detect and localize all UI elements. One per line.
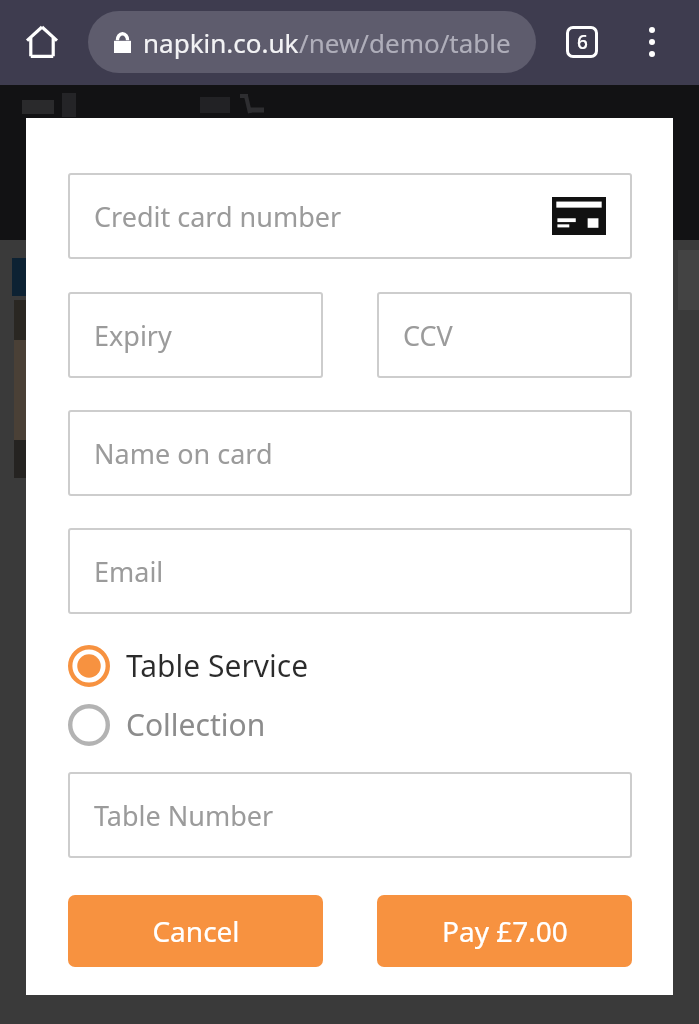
staticText: Credit card number (94, 198, 342, 235)
button[interactable]: Cancel (68, 895, 323, 967)
button[interactable]: napkin.co.uk (88, 11, 536, 73)
staticText: /new/demo/table (299, 25, 511, 60)
staticText: Table Service (126, 645, 309, 686)
button[interactable]: More options (622, 12, 682, 72)
button[interactable]: Collection (68, 695, 632, 754)
button[interactable]: Name on card (68, 410, 632, 496)
button[interactable]: Table Number (68, 772, 632, 858)
button[interactable]: Pay £7.00 (377, 895, 632, 967)
button[interactable]: Credit card number (68, 173, 632, 259)
button[interactable]: CCV (377, 292, 632, 378)
staticText: Name on card (94, 435, 273, 472)
staticText: Table Number (94, 797, 274, 834)
button[interactable]: Email (68, 528, 632, 614)
button[interactable]: Tabs, 6 open (552, 12, 612, 72)
staticText: Expiry (94, 317, 172, 354)
button[interactable]: Table Service (68, 636, 632, 695)
button[interactable]: Home (10, 10, 74, 74)
staticText: Cancel (152, 912, 240, 950)
staticText: napkin.co.uk (143, 25, 299, 60)
staticText: Email (94, 553, 164, 590)
staticText: Pay £7.00 (442, 912, 568, 950)
staticText: CCV (403, 317, 453, 354)
staticText: Collection (126, 704, 266, 745)
button[interactable]: Expiry (68, 292, 323, 378)
staticText: 6 (577, 29, 588, 55)
